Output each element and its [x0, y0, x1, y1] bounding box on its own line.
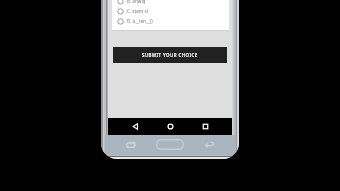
button[interactable]: D. a__len__() [112, 16, 229, 26]
button[interactable]: Home [167, 118, 174, 135]
button[interactable]: Recents [202, 118, 209, 135]
button[interactable]: B. anwlq [112, 0, 229, 6]
button[interactable]: SUBMIT YOUR CHOICE [113, 47, 227, 63]
staticText: B. anwlq [127, 0, 146, 4]
button[interactable]: Home [156, 139, 184, 150]
staticText: D. a__len__() [127, 18, 153, 24]
button[interactable]: Back [205, 141, 215, 149]
button[interactable]: C. stent sl [112, 6, 229, 16]
button[interactable]: Recent apps [126, 141, 137, 149]
button[interactable]: Back [132, 118, 139, 135]
staticText: SUBMIT YOUR CHOICE [142, 52, 198, 58]
staticText: C. stent sl [127, 8, 148, 14]
